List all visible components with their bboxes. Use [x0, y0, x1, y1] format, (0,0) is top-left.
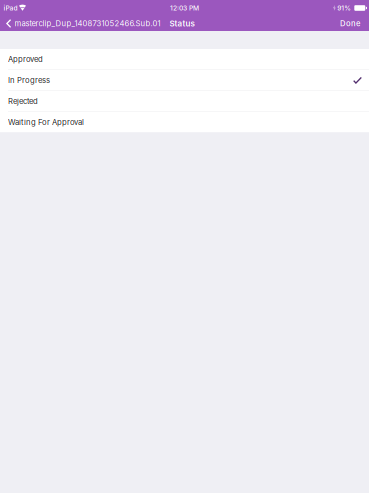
staticText: Status	[169, 19, 194, 28]
button[interactable]: In Progress	[0, 70, 369, 91]
button[interactable]: Waiting For Approval	[0, 112, 369, 132]
staticText: Rejected	[8, 97, 38, 106]
staticText: iPad	[3, 4, 17, 12]
button[interactable]: Back to masterclip_Dup_1408731052466.Sub…	[0, 18, 160, 29]
button[interactable]: Rejected	[0, 91, 369, 112]
staticText: Waiting For Approval	[8, 117, 84, 127]
staticText: 12:03 PM	[170, 4, 199, 12]
staticText: 91%	[337, 4, 351, 12]
staticText: Done	[340, 19, 361, 28]
staticText: Approved	[8, 55, 43, 64]
staticText: masterclip_Dup_1408731052466.Sub.01	[14, 19, 160, 28]
button[interactable]: Done	[340, 18, 369, 29]
staticText: In Progress	[8, 76, 50, 85]
button[interactable]: Approved	[0, 49, 369, 70]
